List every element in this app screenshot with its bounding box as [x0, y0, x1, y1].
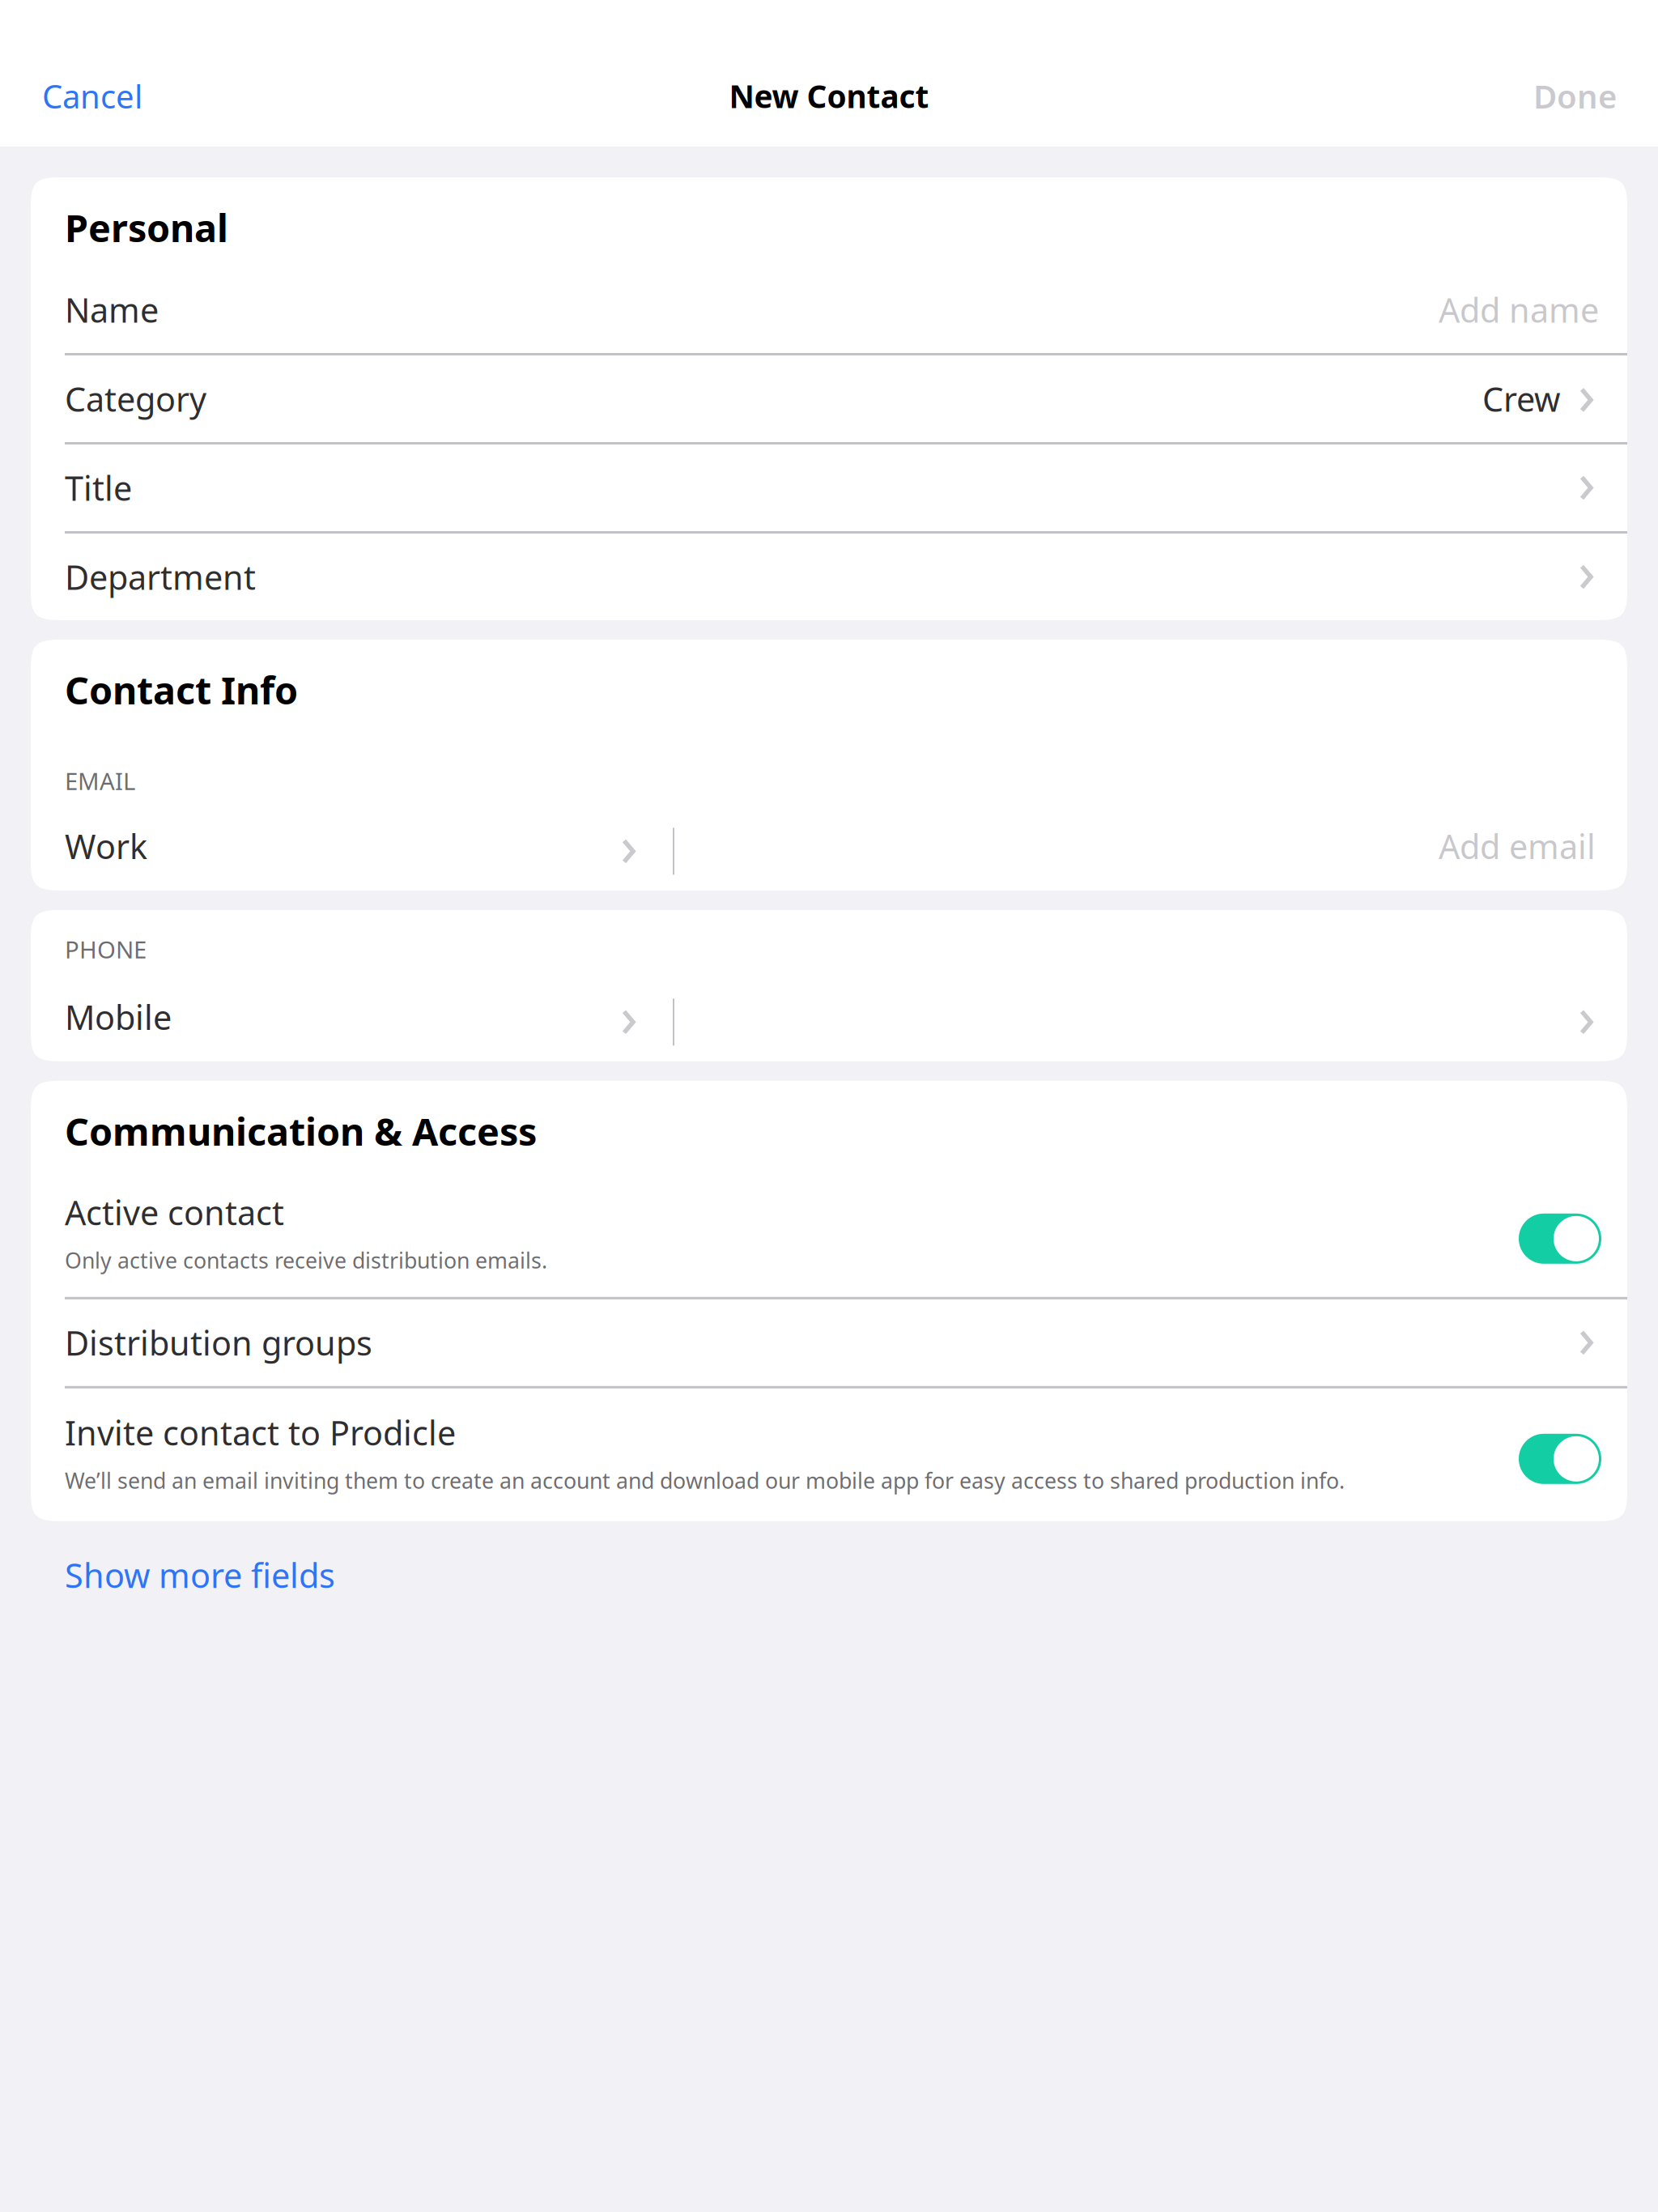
- staticText: Active contact: [65, 1190, 284, 1234]
- button[interactable]: Title: [31, 445, 1627, 531]
- staticText: Cancel: [42, 74, 142, 117]
- staticText: Show more fields: [65, 1553, 335, 1597]
- staticText: Mobile: [65, 995, 172, 1039]
- button[interactable]: Distribution groups: [31, 1299, 1627, 1386]
- button[interactable]: Invite contact to Prodicle: [31, 1388, 1627, 1521]
- staticText: Add email: [1439, 824, 1596, 868]
- staticText: EMAIL: [65, 765, 135, 797]
- staticText: Title: [65, 466, 132, 510]
- button[interactable]: Name: [31, 266, 1627, 353]
- staticText: Communication & Access: [65, 1106, 537, 1156]
- staticText: Contact Info: [65, 665, 298, 715]
- button[interactable]: Work: [31, 801, 1627, 891]
- button[interactable]: Category: [31, 355, 1627, 442]
- staticText: Distribution groups: [65, 1320, 372, 1365]
- staticText: New Contact: [729, 75, 929, 117]
- staticText: Personal: [65, 202, 228, 253]
- button[interactable]: Show more fields: [31, 1541, 359, 1629]
- button[interactable]: Department: [31, 534, 1627, 620]
- staticText: Only active contacts receive distributio…: [65, 1246, 547, 1274]
- staticText: Name: [65, 287, 159, 332]
- staticText: Crew: [1482, 376, 1560, 421]
- button[interactable]: Cancel: [0, 0, 164, 147]
- staticText: Department: [65, 555, 256, 599]
- staticText: We’ll send an email inviting them to cre…: [65, 1466, 1345, 1495]
- staticText: PHONE: [65, 933, 147, 965]
- staticText: Add name: [1439, 287, 1599, 332]
- staticText: Invite contact to Prodicle: [65, 1410, 456, 1455]
- staticText: Done: [1533, 74, 1617, 117]
- button[interactable]: Mobile: [31, 972, 1627, 1061]
- staticText: Category: [65, 376, 206, 421]
- button[interactable]: Done: [1512, 0, 1658, 147]
- button[interactable]: Active contact: [31, 1170, 1627, 1297]
- staticText: Work: [65, 824, 147, 868]
